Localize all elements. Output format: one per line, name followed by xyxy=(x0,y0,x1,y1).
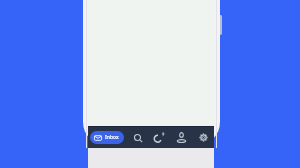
button[interactable] xyxy=(175,131,188,144)
button[interactable] xyxy=(153,131,166,144)
button[interactable] xyxy=(197,131,210,144)
staticText: Inbox xyxy=(105,134,119,141)
button[interactable]: Inbox xyxy=(90,131,124,144)
button[interactable] xyxy=(132,132,144,144)
